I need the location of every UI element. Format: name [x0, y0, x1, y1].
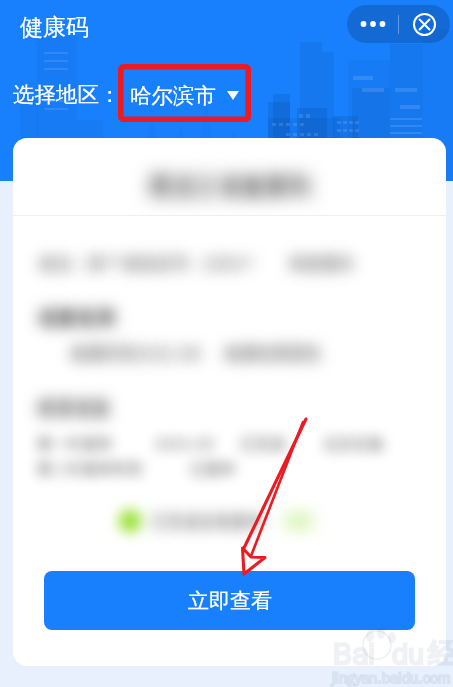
- button[interactable]: More: [347, 5, 398, 43]
- staticText: 健康码: [20, 13, 89, 42]
- button[interactable]: 哈尔滨市: [130, 81, 239, 110]
- staticText: 选择地区：: [13, 81, 121, 108]
- staticText: 立即查看: [188, 588, 272, 614]
- button[interactable]: Close: [399, 5, 450, 43]
- button[interactable]: 立即查看: [44, 571, 415, 630]
- staticText: 哈尔滨市: [130, 82, 216, 109]
